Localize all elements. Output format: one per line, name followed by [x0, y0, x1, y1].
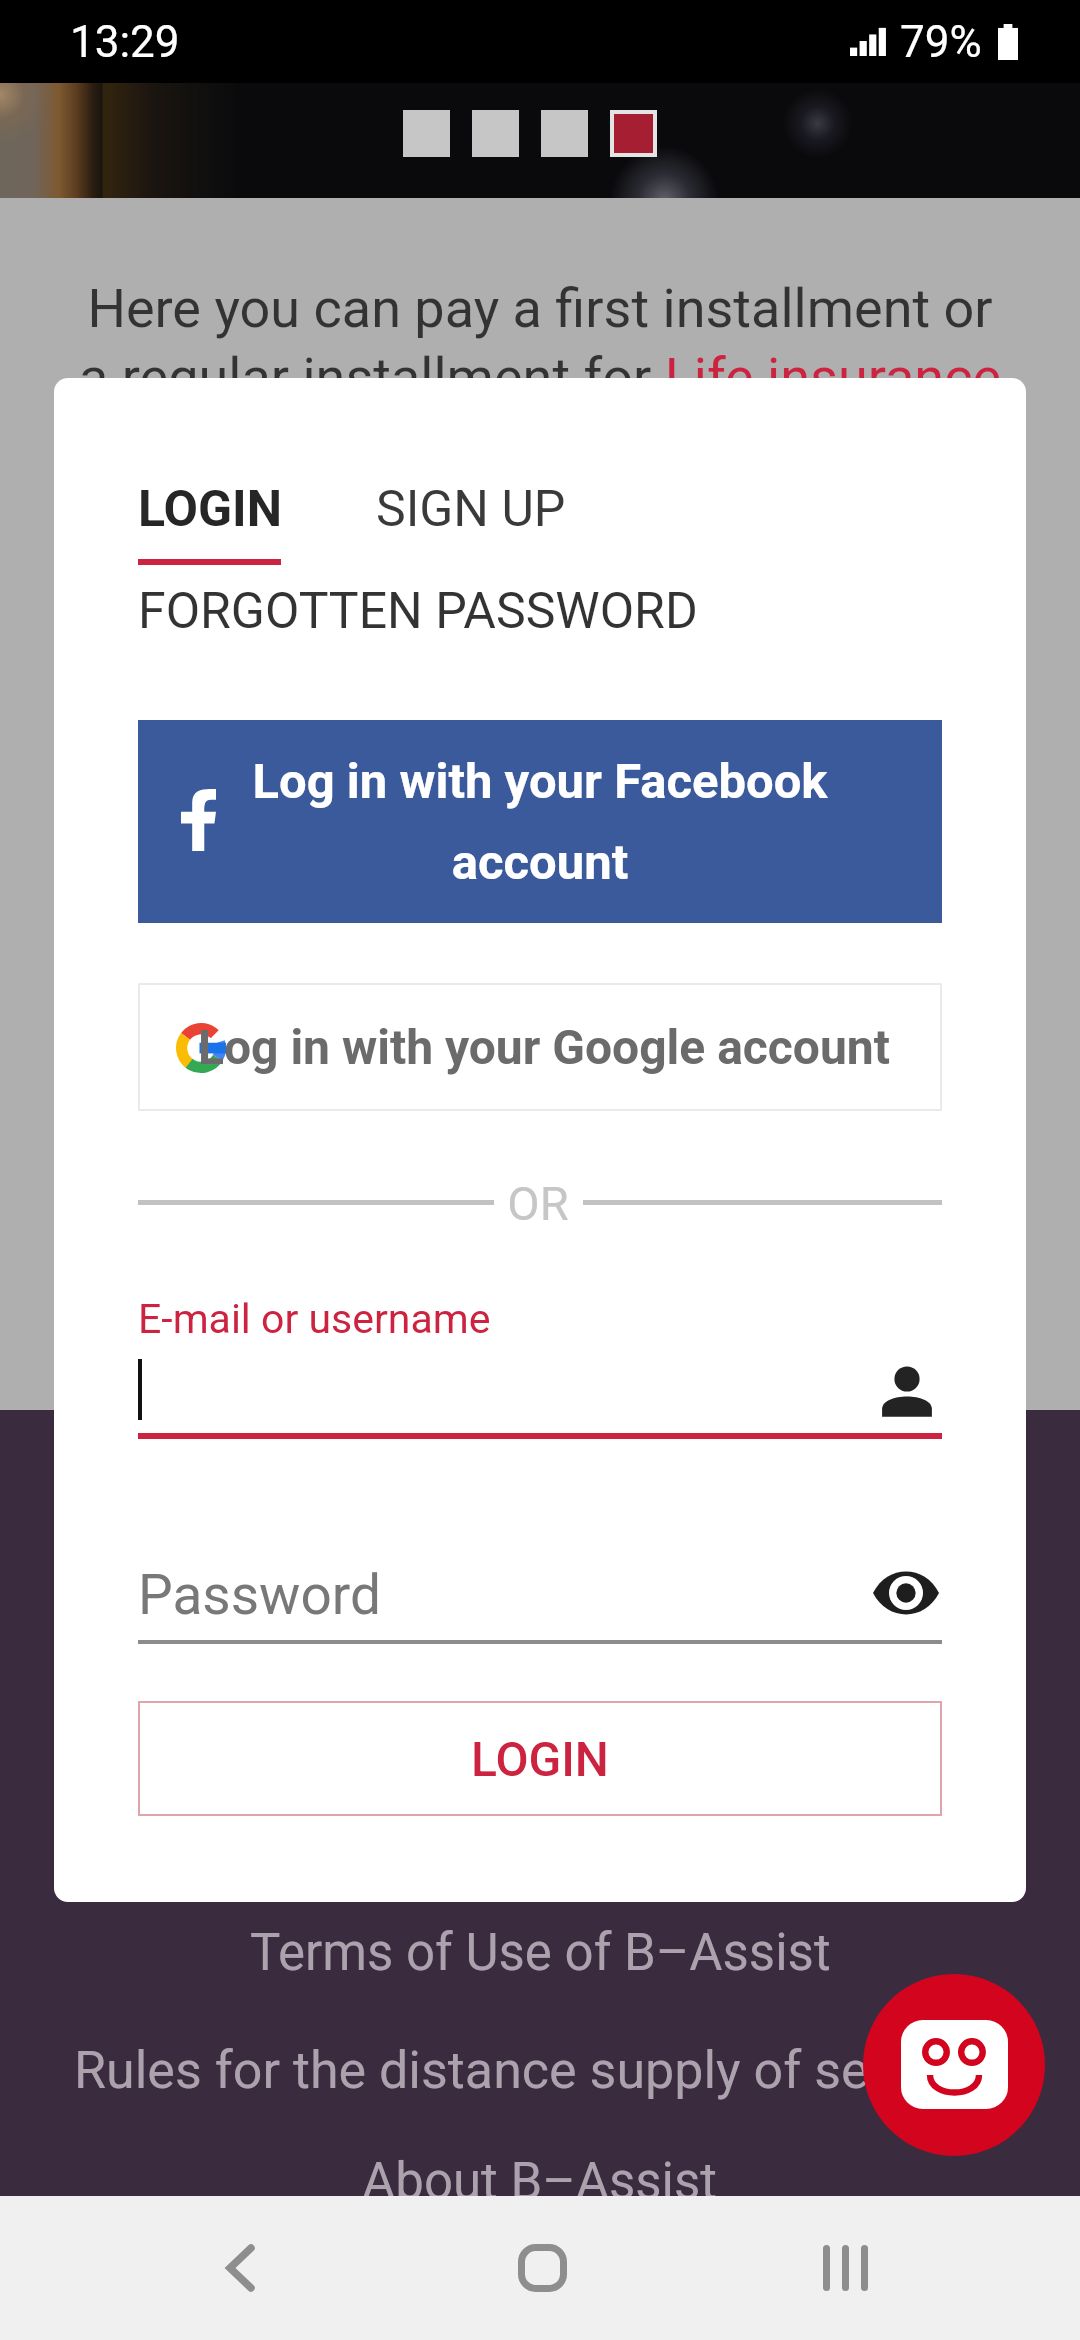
button[interactable]: LOGIN	[138, 480, 282, 565]
button[interactable]: Chat with assistant	[863, 1974, 1045, 2156]
button[interactable]: FORGOTTEN PASSWORD	[138, 582, 698, 641]
button[interactable]: Rules for the distance supply of service…	[74, 2040, 1007, 2101]
staticText: Here you can pay a first installment or …	[78, 277, 1002, 409]
staticText: E-mail or username	[138, 1295, 491, 1343]
staticText: Log in with your Google account	[198, 1019, 890, 1075]
staticText: Password	[138, 1563, 381, 1627]
staticText: About B–Assist	[362, 2152, 718, 2196]
button[interactable]: Terms of Use of B–Assist	[250, 1923, 831, 1983]
button[interactable]: Back	[150, 2196, 330, 2340]
button[interactable]: Home	[452, 2196, 632, 2340]
button[interactable]: LOGIN	[138, 1701, 942, 1816]
button[interactable]: About B–Assist	[362, 2152, 718, 2196]
staticText: Log in with your Facebook account	[240, 753, 840, 891]
button[interactable]: SIGN UP	[376, 480, 566, 539]
staticText: LOGIN	[138, 480, 282, 539]
staticText: Terms of Use of B–Assist	[250, 1923, 831, 1983]
button[interactable]: Recent apps	[755, 2196, 935, 2340]
other: Show password	[873, 1570, 939, 1616]
button[interactable]: Log in with your Facebook account	[138, 720, 942, 923]
staticText: 79%	[900, 16, 982, 68]
staticText: LOGIN	[471, 1731, 609, 1787]
button[interactable]: Log in with your Google account	[138, 983, 942, 1111]
staticText: 13:29	[70, 16, 180, 68]
staticText: Rules for the distance supply of service…	[74, 2040, 1007, 2101]
staticText: SIGN UP	[376, 480, 566, 539]
staticText: FORGOTTEN PASSWORD	[138, 582, 698, 641]
other: Account	[877, 1361, 937, 1421]
staticText: OR	[454, 1176, 622, 1231]
